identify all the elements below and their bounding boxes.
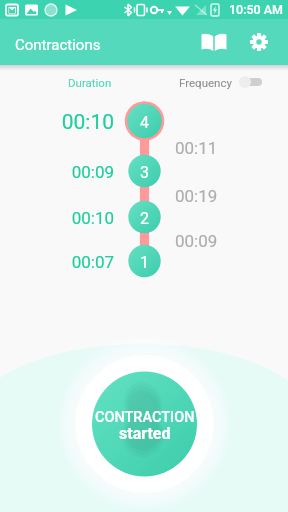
button[interactable]: Frequency	[179, 71, 262, 93]
staticText: Contractions	[15, 36, 101, 54]
staticText: 2	[134, 209, 155, 228]
staticText: 3	[134, 163, 155, 182]
staticText: started	[119, 424, 171, 443]
staticText: Duration	[68, 76, 112, 89]
staticText: 00:09	[175, 231, 218, 251]
staticText: 00:11	[175, 138, 218, 158]
button[interactable]: Settings	[239, 22, 279, 62]
button[interactable]: Guide	[194, 22, 234, 62]
button[interactable]: Contraction started	[78, 357, 212, 491]
staticText: 00:10	[44, 208, 114, 228]
staticText: Frequency	[179, 76, 232, 89]
staticText: 00:09	[44, 162, 114, 182]
staticText: CONTRACTION	[95, 409, 195, 426]
staticText: 00:19	[175, 186, 218, 206]
staticText: 00:07	[44, 252, 114, 272]
staticText: 4	[134, 113, 155, 132]
staticText: 1	[134, 253, 155, 272]
staticText: 00:10	[44, 110, 114, 135]
staticText: 10:50 AM	[229, 2, 284, 17]
